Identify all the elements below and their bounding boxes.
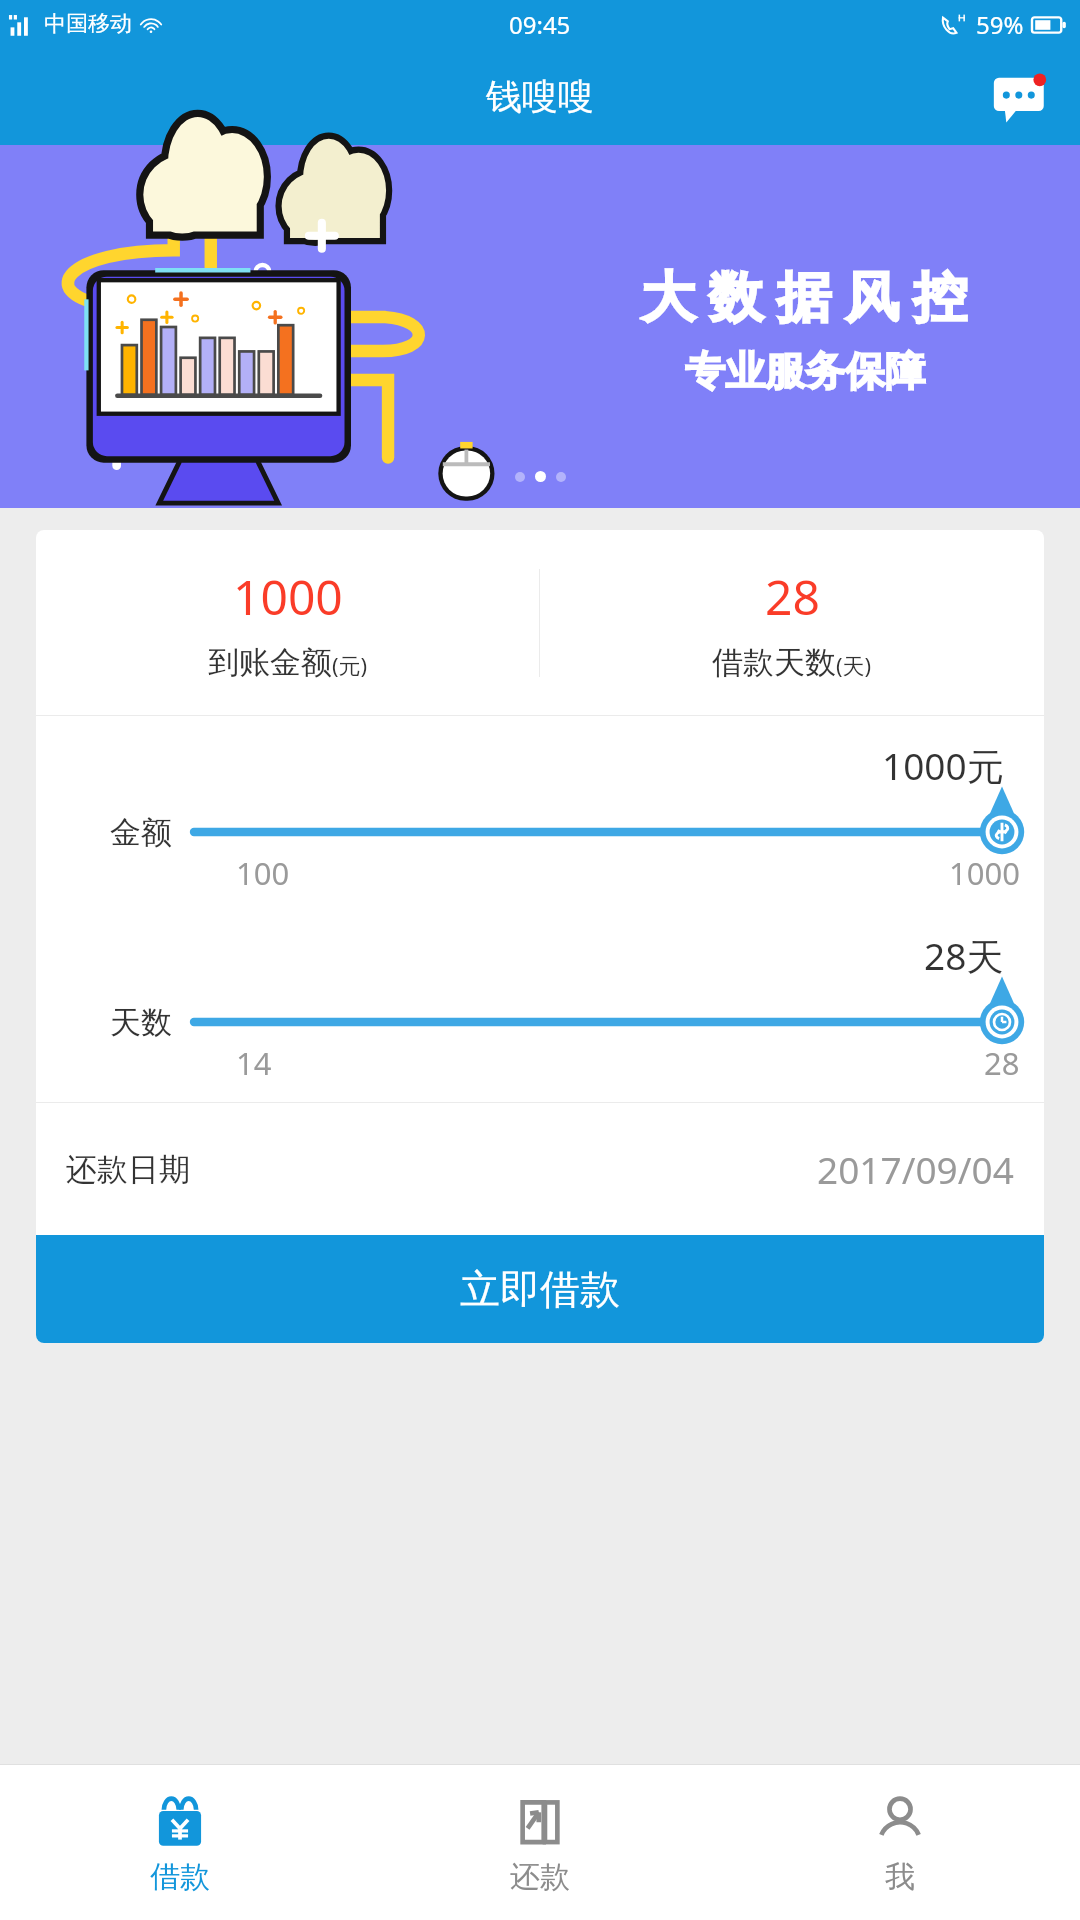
staticText: 钱嗖嗖 [486,74,594,119]
staticText: 28 [984,1042,1020,1084]
staticText: 我 [885,1858,915,1896]
staticText: 14 [236,1042,272,1084]
staticText: 天数 [110,1003,172,1042]
staticText: 1000 [949,852,1020,894]
staticText: 中国移动 [44,10,132,38]
staticText: 59% [976,8,1024,41]
staticText: 2017/09/04 [817,1144,1014,1194]
button[interactable]: 立即借款 [36,1235,1044,1343]
staticText: 借款 [150,1858,210,1896]
staticText: 09:45 [509,8,571,41]
staticText: (天) [836,650,872,680]
button[interactable]: 我 [720,1765,1080,1920]
staticText: 立即借款 [460,1264,620,1314]
staticText: 28 [765,564,820,629]
staticText: 大 数 据 风 控 [641,258,968,332]
staticText: 100 [236,852,290,894]
staticText: 到账金额 [208,643,332,682]
staticText: 借款天数 [712,643,836,682]
staticText: 1000 [233,564,343,629]
staticText: (元) [332,650,368,680]
button[interactable]: 天数 slider [194,992,1002,1052]
button[interactable]: 金额 slider [194,802,1002,862]
button[interactable]: 还款 [360,1765,720,1920]
staticText: 专业服务保障 [685,346,925,396]
staticText: 28天 [924,930,1004,981]
staticText: 金额 [110,813,172,852]
button[interactable]: 借款 [0,1765,360,1920]
staticText: 1000元 [882,740,1004,791]
button[interactable]: Messages [990,65,1054,129]
staticText: 还款日期 [66,1150,190,1189]
staticText: 还款 [510,1858,570,1896]
